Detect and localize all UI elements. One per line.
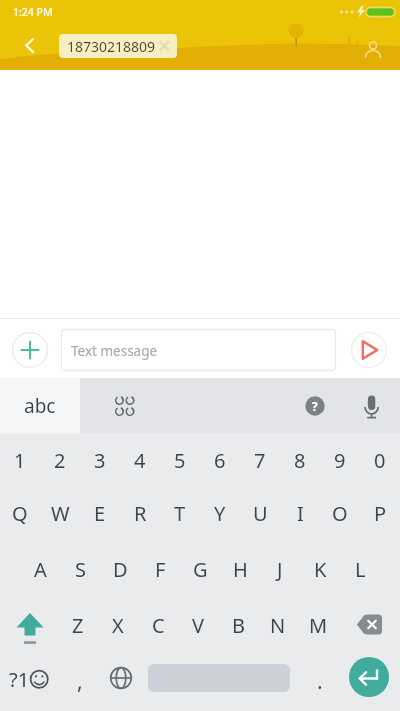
staticText: C xyxy=(152,612,165,639)
staticText: E xyxy=(94,500,106,527)
staticText: M xyxy=(309,612,328,639)
staticText: , xyxy=(77,667,83,696)
staticText: 8 xyxy=(294,447,306,474)
staticText: R xyxy=(134,500,147,527)
staticText: Z xyxy=(72,612,84,639)
staticText: G xyxy=(193,556,208,583)
staticText: 7 xyxy=(254,447,266,474)
staticText: 9 xyxy=(334,447,346,474)
staticText: S xyxy=(75,556,86,583)
staticText: ? xyxy=(312,398,318,414)
staticText: V xyxy=(192,612,204,639)
staticText: W xyxy=(51,500,70,527)
staticText: 1:24 PM xyxy=(13,5,53,19)
staticText: ?1 xyxy=(9,666,30,693)
staticText: 1 xyxy=(14,447,26,474)
staticText: N xyxy=(270,612,286,639)
staticText: J xyxy=(277,556,283,583)
staticText: L xyxy=(355,556,366,583)
staticText: O xyxy=(332,500,348,527)
staticText: U xyxy=(253,500,268,527)
staticText: D xyxy=(113,556,128,583)
staticText: 3 xyxy=(94,447,106,474)
staticText: X xyxy=(112,612,124,639)
staticText: Y xyxy=(214,500,226,527)
staticText: I xyxy=(297,500,304,527)
staticText: abc xyxy=(24,393,56,419)
staticText: . xyxy=(317,667,323,696)
staticText: 4 xyxy=(134,447,146,474)
staticText: H xyxy=(233,556,248,583)
staticText: F xyxy=(155,556,166,583)
staticText: 5 xyxy=(174,447,186,474)
staticText: 6 xyxy=(214,447,226,474)
staticText: Text message xyxy=(71,342,158,360)
staticText: 0 xyxy=(374,447,386,474)
staticText: Q xyxy=(12,500,28,527)
staticText: P xyxy=(374,500,387,527)
staticText: A xyxy=(34,556,47,583)
staticText: 18730218809 xyxy=(67,37,156,56)
staticText: 2 xyxy=(54,447,66,474)
staticText: T xyxy=(174,500,186,527)
staticText: K xyxy=(314,556,327,583)
staticText: B xyxy=(232,612,245,639)
